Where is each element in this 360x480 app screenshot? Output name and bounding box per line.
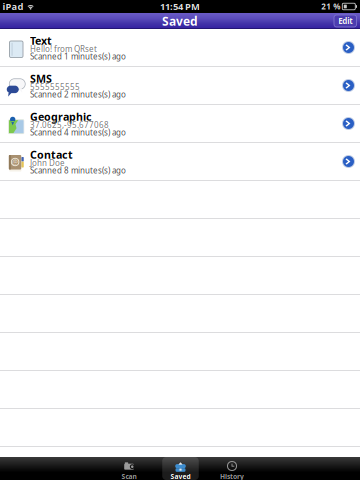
button[interactable]: Details [342,41,355,54]
staticText: iPad [2,0,23,13]
staticText: Text [30,33,52,48]
staticText: Saved [170,472,190,480]
staticText: Hello! from QRset [30,43,97,54]
button[interactable]: Details [342,117,355,130]
staticText: Edit [338,16,352,26]
button[interactable]: Text [0,29,360,67]
staticText: 37.0625,-95.677068 [30,119,109,130]
staticText: Contact [30,147,73,162]
button[interactable]: SMS [0,67,360,105]
button[interactable]: Saved [162,457,199,480]
staticText: Scan [121,472,136,480]
staticText: 11:54 PM [160,0,200,13]
button[interactable]: Scan [111,457,147,480]
staticText: Scanned 2 minutes(s) ago [30,89,126,100]
staticText: Scanned 1 minutes(s) ago [30,51,126,62]
button[interactable]: Edit [334,15,356,27]
staticText: SMS [30,71,52,86]
staticText: History [220,472,244,480]
staticText: Saved [162,13,198,29]
staticText: @ [12,158,18,166]
staticText: 5555555555 [30,81,80,92]
button[interactable]: History [214,457,250,480]
button[interactable]: Details [342,79,355,92]
button[interactable]: Details [342,155,355,168]
staticText: Geographic [30,109,92,124]
staticText: 21 % [321,1,340,12]
staticText: Scanned 8 minutes(s) ago [30,165,126,176]
button[interactable]: Geographic [0,105,360,143]
button[interactable]: @ [0,143,360,181]
staticText: Scanned 4 minutes(s) ago [30,127,126,138]
staticText: John Doe [30,157,65,168]
